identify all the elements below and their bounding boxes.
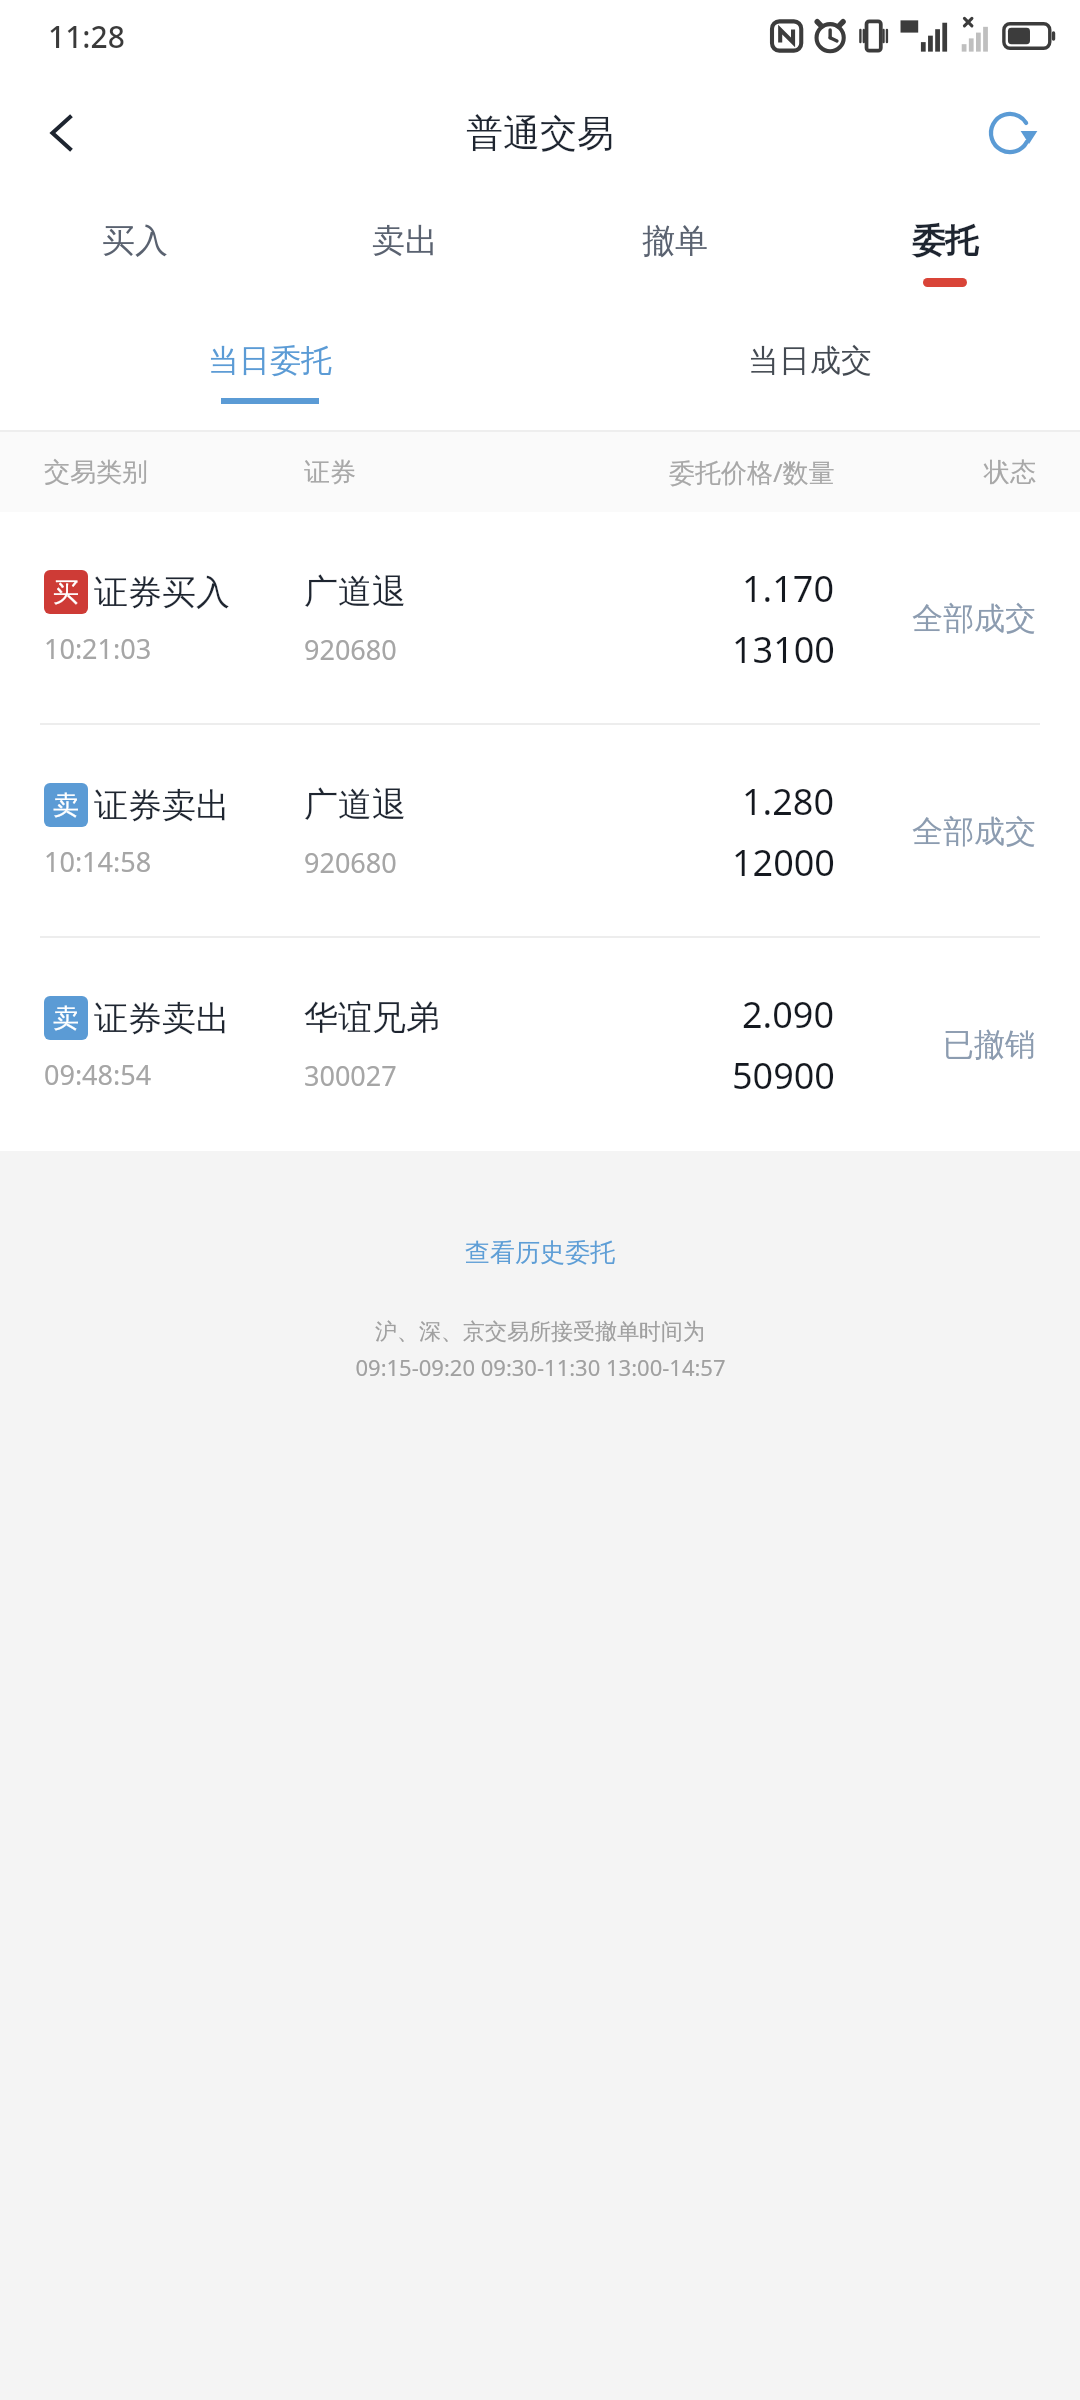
button[interactable]: 委托 [810,194,1080,312]
staticText: 1.170 [742,564,835,613]
staticText: 1.280 [742,777,835,826]
staticText: 广道退 [304,570,406,613]
staticText: 状态 [984,456,1036,489]
staticText: 全部成交 [912,599,1036,638]
staticText: 11:28 [48,16,125,57]
button[interactable]: 卖出 [270,194,540,312]
staticText: 10:14:58 [44,843,152,880]
staticText: 09:48:54 [44,1056,152,1093]
button[interactable]: 撤单 [540,194,810,312]
staticText: 卖出 [372,220,438,262]
staticText: 已撤销 [943,1025,1036,1064]
staticText: 12000 [732,838,835,887]
staticText: 09:15-09:20 09:30-11:30 13:00-14:57 [355,1352,726,1382]
staticText: 当日成交 [748,341,872,380]
staticText: 委托价格/数量 [669,454,835,490]
staticText: 委托 [912,220,978,262]
staticText: 买入 [102,220,168,262]
staticText: 2.090 [742,990,835,1039]
staticText: 当日委托 [208,341,332,380]
button[interactable]: 当日委托 [0,312,540,432]
button[interactable]: 卖 [0,938,1080,1151]
button[interactable]: 买 [0,512,1080,725]
button[interactable]: 卖 [0,725,1080,938]
staticText: 10:21:03 [44,630,152,667]
button[interactable]: 买入 [0,194,270,312]
staticText: 广道退 [304,783,406,826]
staticText: 证券 [304,456,356,489]
staticText: 卖 [53,1002,79,1035]
staticText: 买 [53,576,79,609]
staticText: 920680 [304,844,397,881]
staticText: 920680 [304,631,397,668]
staticText: 50900 [732,1051,835,1100]
staticText: 交易类别 [44,456,148,489]
staticText: 13100 [732,625,835,674]
staticText: 证券卖出 [94,784,230,827]
staticText: 撤单 [642,220,708,262]
staticText: 普通交易 [466,110,614,157]
button[interactable]: Back [22,93,102,173]
button[interactable]: 查看历史委托 [0,1237,1080,1268]
staticText: 全部成交 [912,812,1036,851]
staticText: 华谊兄弟 [304,996,440,1039]
staticText: 证券买入 [94,571,230,614]
button[interactable]: 当日成交 [540,312,1080,432]
staticText: 查看历史委托 [465,1237,615,1268]
button[interactable]: Refresh [970,93,1050,173]
staticText: 300027 [304,1057,397,1094]
staticText: 沪、深、京交易所接受撤单时间为 [375,1318,705,1346]
staticText: 证券卖出 [94,997,230,1040]
staticText: 卖 [53,789,79,822]
